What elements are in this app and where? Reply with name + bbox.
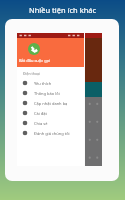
button[interactable]: Thông báo lỗi bbox=[17, 88, 84, 98]
staticText: Yêu thích bbox=[34, 81, 52, 86]
button[interactable]: Yêu thích bbox=[17, 78, 84, 88]
button[interactable]: Bắt đầu cuộc gọi bbox=[28, 43, 40, 55]
staticText: Chia sẻ bbox=[34, 121, 48, 126]
staticText: Thông báo lỗi bbox=[34, 91, 60, 96]
staticText: Cập nhật danh bạ bbox=[34, 101, 68, 106]
staticText: Điện thoại bbox=[23, 71, 40, 76]
staticText: Cài đặt bbox=[34, 111, 47, 116]
staticText: Bắt đầu cuộc gọi bbox=[17, 58, 52, 63]
button[interactable]: Chia sẻ bbox=[17, 118, 84, 128]
button[interactable]: Cập nhật danh bạ bbox=[17, 98, 84, 108]
staticText: Đánh giá chúng tôi bbox=[34, 131, 70, 136]
button[interactable]: Đánh giá chúng tôi bbox=[17, 128, 84, 138]
staticText: Nhiều tiện ích khác bbox=[29, 5, 97, 15]
button[interactable]: Cài đặt bbox=[17, 108, 84, 118]
